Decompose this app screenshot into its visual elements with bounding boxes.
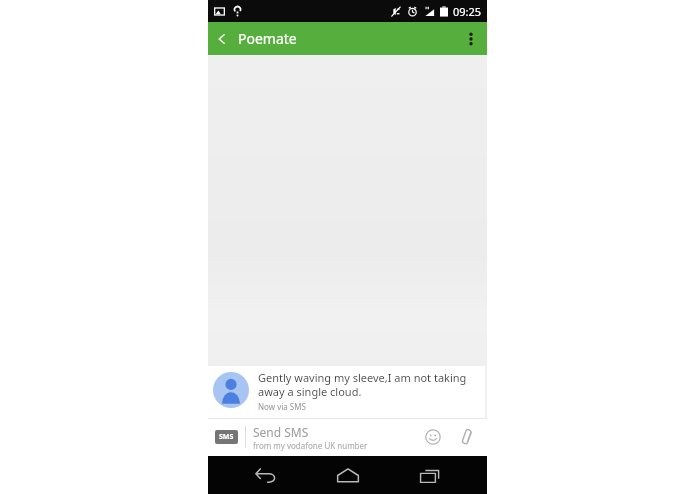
button[interactable]: Back [208,25,307,52]
button[interactable]: Insert emoji [420,424,446,450]
button[interactable]: SMS [215,430,238,444]
staticText: Poemate [238,29,297,48]
staticText: SMS [219,432,234,442]
button[interactable]: Home [324,456,372,494]
staticText: from my vodafone UK number [253,440,368,451]
other: Back [216,33,228,45]
staticText: Gently waving my sleeve,I am not taking … [258,370,467,399]
button[interactable]: Recent apps [405,456,453,494]
staticText: 09:25 [453,4,482,19]
button[interactable]: More options [455,22,487,55]
staticText: Now via SMS [258,401,306,412]
button[interactable]: Gently waving my sleeve,I am not taking … [208,366,485,418]
button[interactable]: Send SMS [253,424,420,451]
staticText: Send SMS [253,424,309,440]
button[interactable]: Back [242,456,290,494]
button[interactable]: Attach file [453,424,479,450]
